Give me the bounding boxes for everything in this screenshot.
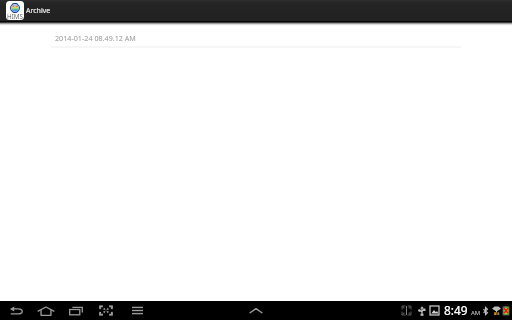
- staticText: Archive: [26, 6, 51, 16]
- button[interactable]: Back: [1, 301, 31, 320]
- button[interactable]: Bluetooth: [480, 301, 491, 320]
- button[interactable]: 2014-01-24 08.49.12 AM: [0, 29, 512, 47]
- button[interactable]: HIMS, up: [5, 1, 24, 20]
- staticText: 2014-01-24 08.49.12 AM: [55, 33, 136, 43]
- button[interactable]: Battery: [500, 301, 511, 320]
- button[interactable]: Expand system bar: [247, 301, 265, 320]
- staticText: AM: [471, 309, 481, 317]
- staticText: 8:49: [444, 302, 468, 318]
- button[interactable]: USB connected: [415, 301, 429, 320]
- button[interactable]: Home: [31, 301, 61, 320]
- button[interactable]: Recent apps: [61, 301, 91, 320]
- button[interactable]: Screenshot: [91, 301, 121, 320]
- staticText: HIMS: [7, 12, 23, 20]
- button[interactable]: Wi-Fi: [490, 301, 502, 320]
- button[interactable]: Menu: [122, 301, 152, 320]
- button[interactable]: Screen mirroring: [399, 301, 414, 320]
- button[interactable]: 8:49: [444, 301, 481, 320]
- button[interactable]: Screenshot captured: [428, 301, 441, 320]
